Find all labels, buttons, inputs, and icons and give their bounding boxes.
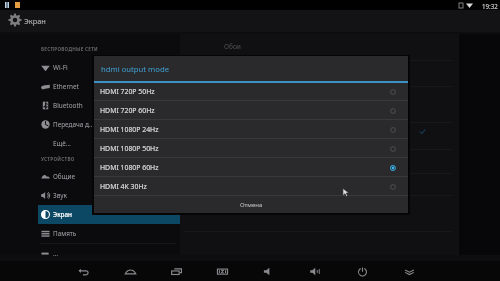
staticText: Экран bbox=[24, 16, 46, 26]
staticText: HDMI 720P 60Hz bbox=[100, 106, 155, 115]
button[interactable]: HDMI 1080P 24Hz bbox=[94, 120, 408, 139]
staticText: Передача д… bbox=[53, 120, 95, 129]
staticText: Память bbox=[53, 229, 77, 238]
staticText: Ethernet bbox=[53, 82, 79, 91]
button[interactable]: Общие bbox=[38, 167, 180, 186]
button[interactable]: Recents bbox=[160, 261, 192, 281]
staticText: … bbox=[53, 249, 59, 258]
staticText: Wi-Fi bbox=[53, 63, 68, 72]
button[interactable]: Home bbox=[114, 261, 146, 281]
staticText: HDMI 1080P 60Hz bbox=[100, 163, 159, 172]
button[interactable]: HDMI 720P 60Hz bbox=[94, 101, 408, 120]
staticText: HDMI 1080P 50Hz bbox=[100, 144, 159, 153]
button[interactable]: Back bbox=[67, 261, 99, 281]
button[interactable]: Отмена bbox=[94, 196, 408, 213]
button[interactable]: HDMI 4K 30Hz bbox=[94, 177, 408, 196]
button[interactable]: Память bbox=[38, 224, 180, 243]
staticText: Экран bbox=[53, 210, 72, 219]
staticText: Общие bbox=[53, 172, 75, 181]
staticText: HDMI 4K 30Hz bbox=[100, 182, 147, 191]
button[interactable]: Ethernet bbox=[38, 77, 180, 96]
button[interactable]: Wi-Fi bbox=[38, 58, 180, 77]
staticText: HDMI 720P 50Hz bbox=[100, 87, 155, 96]
button[interactable]: Обои bbox=[190, 35, 260, 55]
button[interactable]: Screenshot bbox=[206, 261, 238, 281]
staticText: Обои bbox=[224, 42, 241, 51]
button[interactable]: Power bbox=[346, 261, 378, 281]
staticText: hdmi output mode bbox=[101, 64, 169, 74]
staticText: Звук bbox=[53, 191, 67, 200]
button[interactable]: Передача д… bbox=[38, 115, 180, 134]
button[interactable]: HDMI 1080P 60Hz bbox=[94, 158, 408, 177]
staticText: УСТРОЙСТВО bbox=[41, 156, 75, 162]
staticText: Bluetooth bbox=[53, 101, 83, 110]
button[interactable]: Bluetooth bbox=[38, 96, 180, 115]
staticText: 19:32 bbox=[482, 2, 498, 10]
button[interactable]: … bbox=[38, 244, 180, 263]
button[interactable]: Volume down bbox=[252, 261, 284, 281]
button[interactable]: HDMI 720P 50Hz bbox=[94, 82, 408, 101]
button[interactable]: Ещё… bbox=[38, 134, 180, 153]
button[interactable]: HDMI 1080P 50Hz bbox=[94, 139, 408, 158]
staticText: HDMI 1080P 24Hz bbox=[100, 125, 159, 134]
staticText: Отмена bbox=[240, 201, 263, 209]
button[interactable]: Экран bbox=[38, 205, 180, 224]
button[interactable]: Collapse bbox=[393, 261, 425, 281]
button[interactable]: Volume up bbox=[299, 261, 331, 281]
staticText: БЕСПРОВОДНЫЕ СЕТИ bbox=[41, 46, 99, 52]
staticText: Ещё… bbox=[53, 139, 71, 148]
button[interactable]: Звук bbox=[38, 186, 180, 205]
